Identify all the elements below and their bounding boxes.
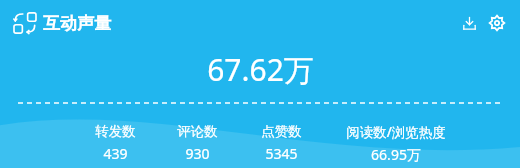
staticText: 5345 — [265, 144, 298, 163]
button[interactable]: 转发数 — [74, 123, 156, 163]
staticText: 互动声量 — [43, 13, 111, 34]
staticText: 转发数 — [95, 123, 136, 140]
staticText: 439 — [103, 144, 128, 163]
staticText: 点赞数 — [261, 123, 302, 140]
button[interactable]: Download — [456, 10, 482, 36]
staticText: 66.95万 — [371, 145, 421, 164]
button[interactable]: Settings — [484, 10, 510, 36]
button[interactable]: 点赞数 — [238, 123, 324, 163]
button[interactable]: 互动声量 — [14, 12, 111, 34]
staticText: 评论数 — [177, 123, 218, 140]
staticText: 930 — [185, 144, 210, 163]
button[interactable]: 评论数 — [156, 123, 238, 163]
staticText: 67.62万 — [207, 49, 314, 90]
staticText: 阅读数/浏览热度 — [346, 123, 446, 141]
button[interactable]: 阅读数/浏览热度 — [324, 123, 468, 164]
